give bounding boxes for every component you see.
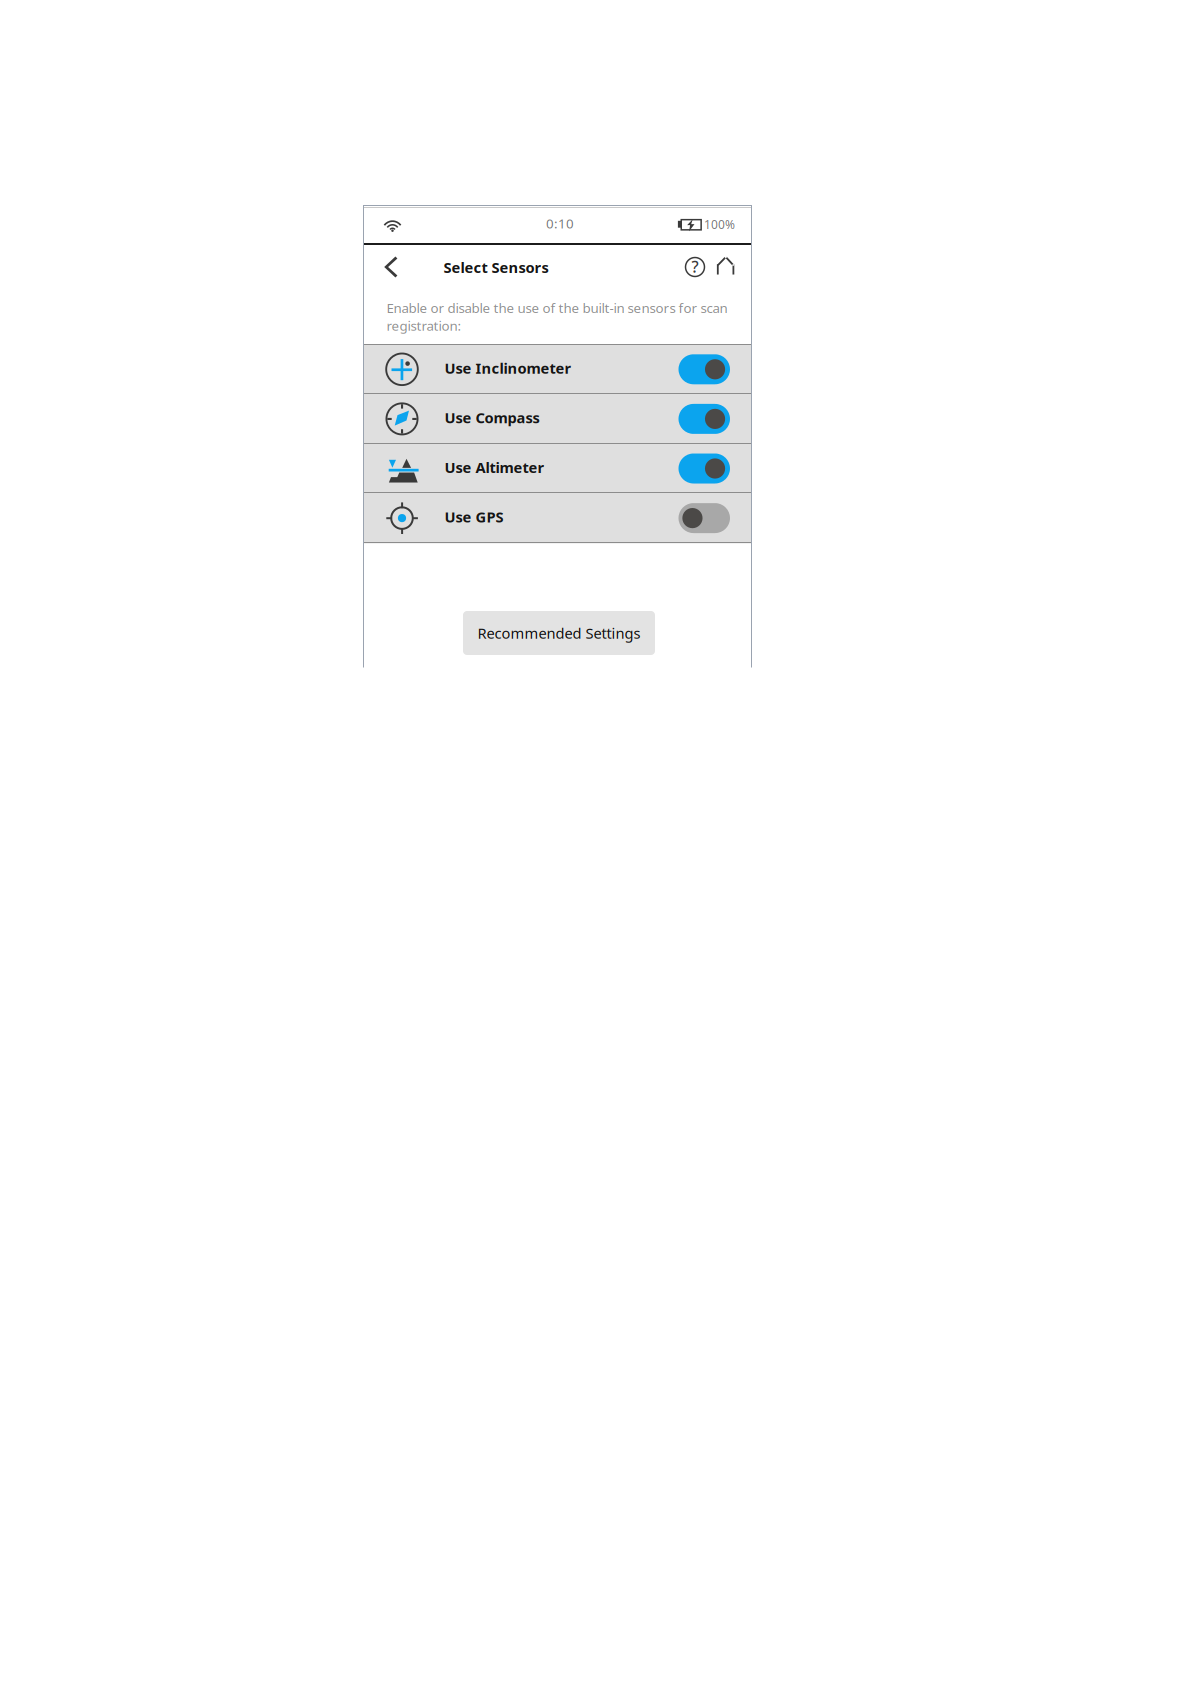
staticText: Use Altimeter	[444, 457, 544, 477]
button[interactable]: Recommended Settings	[463, 611, 655, 655]
staticText: 0:10	[546, 214, 574, 232]
staticText: Recommended Settings	[477, 623, 640, 643]
staticText: 100%	[704, 216, 735, 232]
button[interactable]: Help	[682, 248, 708, 286]
button[interactable]: Home	[714, 246, 738, 284]
button[interactable]: Use Altimeter	[364, 444, 751, 493]
staticText: Use GPS	[444, 507, 503, 527]
button[interactable]: Use Inclinometer	[364, 345, 751, 394]
button[interactable]: Use Compass	[364, 395, 751, 443]
staticText: Enable or disable the use of the built-i…	[386, 299, 727, 334]
staticText: Use Compass	[444, 408, 539, 427]
staticText: ?	[691, 256, 698, 277]
staticText: Select Sensors	[443, 257, 548, 277]
button[interactable]: Back	[376, 247, 406, 287]
staticText: Use Inclinometer	[444, 358, 571, 378]
button[interactable]: Use GPS	[364, 494, 751, 542]
